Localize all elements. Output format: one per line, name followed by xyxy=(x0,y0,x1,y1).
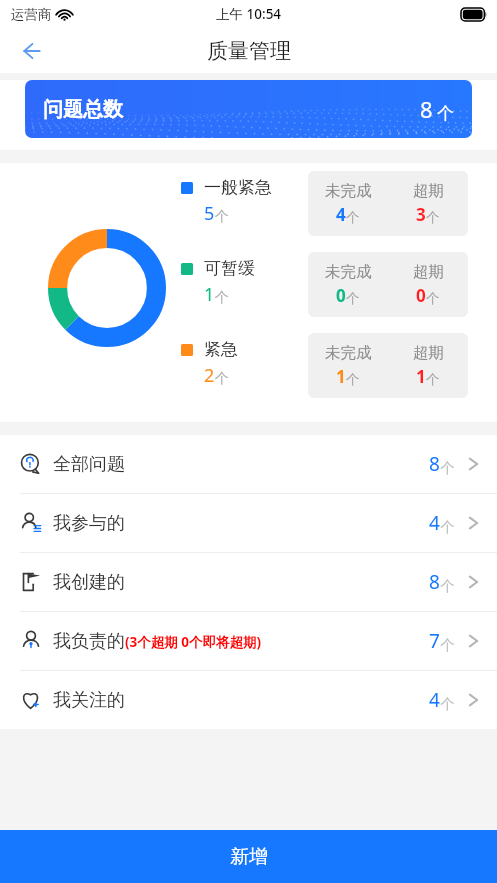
button[interactable]: 我关注的 xyxy=(0,671,497,729)
staticText: 8 xyxy=(429,569,440,595)
staticText: 上午 10:54 xyxy=(216,5,282,23)
staticText: 个 xyxy=(346,209,360,226)
button[interactable]: 我参与的 xyxy=(0,494,497,552)
button[interactable]: 新增 xyxy=(0,830,497,883)
button[interactable]: 我创建的 xyxy=(0,553,497,611)
staticText: 0 xyxy=(416,284,426,307)
staticText: 个 xyxy=(426,290,440,307)
staticText: 8 xyxy=(429,451,440,477)
button[interactable]: 全部问题 xyxy=(0,435,497,493)
staticText: 个 xyxy=(440,518,455,536)
staticText: 紧急 xyxy=(204,339,238,360)
staticText: 个 xyxy=(440,636,455,654)
staticText: 5 xyxy=(204,201,215,226)
staticText: 个 xyxy=(346,290,360,307)
staticText: 个 xyxy=(215,370,229,388)
staticText: 7 xyxy=(429,628,440,654)
staticText: 个 xyxy=(346,371,360,388)
staticText: 8 xyxy=(420,94,433,124)
button[interactable]: 未完成 xyxy=(308,252,468,317)
staticText: 新增 xyxy=(230,845,268,869)
staticText: 个 xyxy=(437,103,454,124)
staticText: 可暂缓 xyxy=(204,258,255,279)
staticText: 个 xyxy=(440,577,455,595)
staticText: 4 xyxy=(429,510,440,536)
staticText: 1 xyxy=(416,365,426,388)
staticText: 质量管理 xyxy=(207,38,291,64)
staticText: 3 xyxy=(416,203,426,226)
staticText: 个 xyxy=(426,371,440,388)
staticText: 问题总数 xyxy=(43,97,123,122)
button[interactable]: 返回 xyxy=(10,29,54,73)
button[interactable]: 未完成 xyxy=(308,333,468,398)
staticText: 我负责的(3个超期 0个即将超期) xyxy=(53,630,262,653)
button[interactable]: 我负责的(3个超期 0个即将超期) xyxy=(0,612,497,670)
staticText: 全部问题 xyxy=(53,453,125,476)
staticText: 运营商 xyxy=(11,6,52,23)
staticText: 个 xyxy=(440,459,455,477)
staticText: 1 xyxy=(336,365,346,388)
button[interactable]: 问题总数 xyxy=(25,80,472,138)
staticText: 1 xyxy=(204,282,215,307)
staticText: 未完成 xyxy=(325,181,372,201)
staticText: 0 xyxy=(336,284,346,307)
staticText: 个 xyxy=(215,289,229,307)
staticText: 2 xyxy=(204,363,215,388)
staticText: 超期 xyxy=(413,262,444,282)
staticText: 一般紧急 xyxy=(204,177,272,198)
staticText: 个 xyxy=(426,209,440,226)
button[interactable]: 未完成 xyxy=(308,171,468,236)
staticText: 4 xyxy=(429,687,440,713)
staticText: 4 xyxy=(336,203,346,226)
staticText: 我参与的 xyxy=(53,512,125,535)
staticText: 我关注的 xyxy=(53,689,125,712)
staticText: 超期 xyxy=(413,181,444,201)
staticText: 个 xyxy=(440,695,455,713)
staticText: 我创建的 xyxy=(53,571,125,594)
staticText: 个 xyxy=(215,208,229,226)
staticText: 超期 xyxy=(413,343,444,363)
staticText: 未完成 xyxy=(325,262,372,282)
staticText: 未完成 xyxy=(325,343,372,363)
